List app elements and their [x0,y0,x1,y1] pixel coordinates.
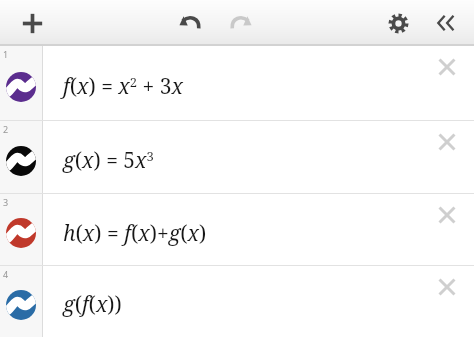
button[interactable]: Expression 4 colour [0,266,474,337]
staticText: 1 [3,48,9,60]
staticText: 4 [3,268,9,280]
staticText: 2 [3,123,9,135]
button[interactable]: Expression 1 colour [0,46,474,121]
button[interactable]: Expression 2 colour [0,121,42,194]
button[interactable]: Settings [376,1,420,45]
staticText: f(x) = x2 + 3x [63,72,183,101]
button[interactable]: Delete expression 3 [420,194,474,266]
button[interactable]: Expression 3 colour [0,194,474,266]
button[interactable]: Add expression [10,1,54,45]
button[interactable]: Delete expression 1 [420,46,474,121]
staticText: h(x) = f(x)+g(x) [63,219,207,248]
button[interactable]: Expression 2 colour [0,121,474,194]
button[interactable]: Delete expression 2 [420,121,474,194]
button[interactable]: Expression 4 colour [0,266,42,337]
staticText: g(x) = 5x3 [63,146,154,175]
button[interactable]: Redo [218,1,262,45]
staticText: 3 [3,196,9,208]
button[interactable]: Collapse panel [424,1,468,45]
staticText: g(f(x)) [63,290,122,319]
button[interactable]: Expression 3 colour [0,194,42,266]
button[interactable]: Expression 1 colour [0,46,42,121]
button[interactable]: Undo [168,1,212,45]
button[interactable]: Delete expression 4 [420,266,474,337]
